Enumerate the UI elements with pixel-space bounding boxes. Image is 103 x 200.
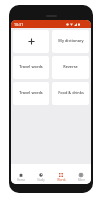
button[interactable]: Reverse [52, 56, 89, 79]
staticText: Travel words [19, 64, 43, 69]
button[interactable]: Food & drinks [52, 82, 89, 105]
staticText: My dictionary [58, 38, 84, 43]
button[interactable]: Study [31, 164, 51, 184]
other: Add dictionary [28, 38, 35, 45]
button[interactable]: Home [11, 164, 31, 184]
staticText: Study [37, 178, 45, 182]
button[interactable]: Words [51, 164, 71, 184]
staticText: Reverse [63, 64, 78, 69]
staticText: More [78, 178, 85, 182]
staticText: 10:31 [14, 22, 24, 27]
staticText: Travel words [19, 90, 43, 95]
staticText: Home [17, 178, 25, 182]
button[interactable]: Add dictionary [13, 30, 49, 53]
staticText: Food & drinks [58, 90, 84, 95]
button[interactable]: Travel words [13, 82, 49, 105]
staticText: Words [57, 178, 66, 182]
button[interactable]: More [71, 164, 91, 184]
button[interactable]: Travel words [13, 56, 49, 79]
button[interactable]: My dictionary [52, 30, 89, 53]
